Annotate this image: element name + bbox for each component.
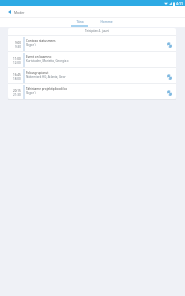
staticText: Täna: [76, 20, 84, 24]
staticText: Tähistame projektipiloodi ko: [26, 87, 68, 91]
button[interactable]: 9:00: [8, 36, 176, 51]
staticText: 4:11: [176, 1, 184, 6]
staticText: 12:00: [13, 61, 21, 65]
button[interactable]: Join online meeting: [162, 68, 176, 83]
button[interactable]: 20:15: [8, 84, 176, 99]
button[interactable]: 16:45: [8, 68, 176, 83]
staticText: Skype'i: [26, 91, 36, 95]
button[interactable]: 11:00: [8, 52, 176, 67]
staticText: Moder: [14, 10, 25, 15]
staticText: 16:45: [13, 73, 21, 77]
staticText: Fokusgrupiarut: [26, 71, 49, 75]
staticText: Kuristuden, Marietta, Georgia x: [26, 59, 69, 63]
staticText: Contoso statusmees: [26, 39, 56, 43]
staticText: 18:00: [13, 77, 21, 81]
button[interactable]: Join online meeting: [162, 36, 176, 51]
button[interactable]: Join online meeting: [162, 84, 176, 99]
staticText: Näitemisek HG, Atlanta, Geor: [26, 75, 66, 79]
staticText: 11:00: [13, 57, 21, 61]
staticText: 9:30: [15, 45, 21, 49]
staticText: 20:15: [13, 89, 21, 93]
staticText: 9:00: [15, 41, 21, 45]
button[interactable]: Back: [5, 8, 13, 16]
staticText: Homme: [100, 20, 113, 24]
staticText: Skype'i: [26, 43, 36, 47]
button[interactable]: Homme: [93, 18, 120, 27]
staticText: 21:30: [13, 93, 21, 97]
staticText: Teisipäev 4. juuni: [85, 29, 110, 33]
staticText: Event on kaamno: [26, 55, 52, 59]
button[interactable]: Täna: [66, 18, 93, 27]
